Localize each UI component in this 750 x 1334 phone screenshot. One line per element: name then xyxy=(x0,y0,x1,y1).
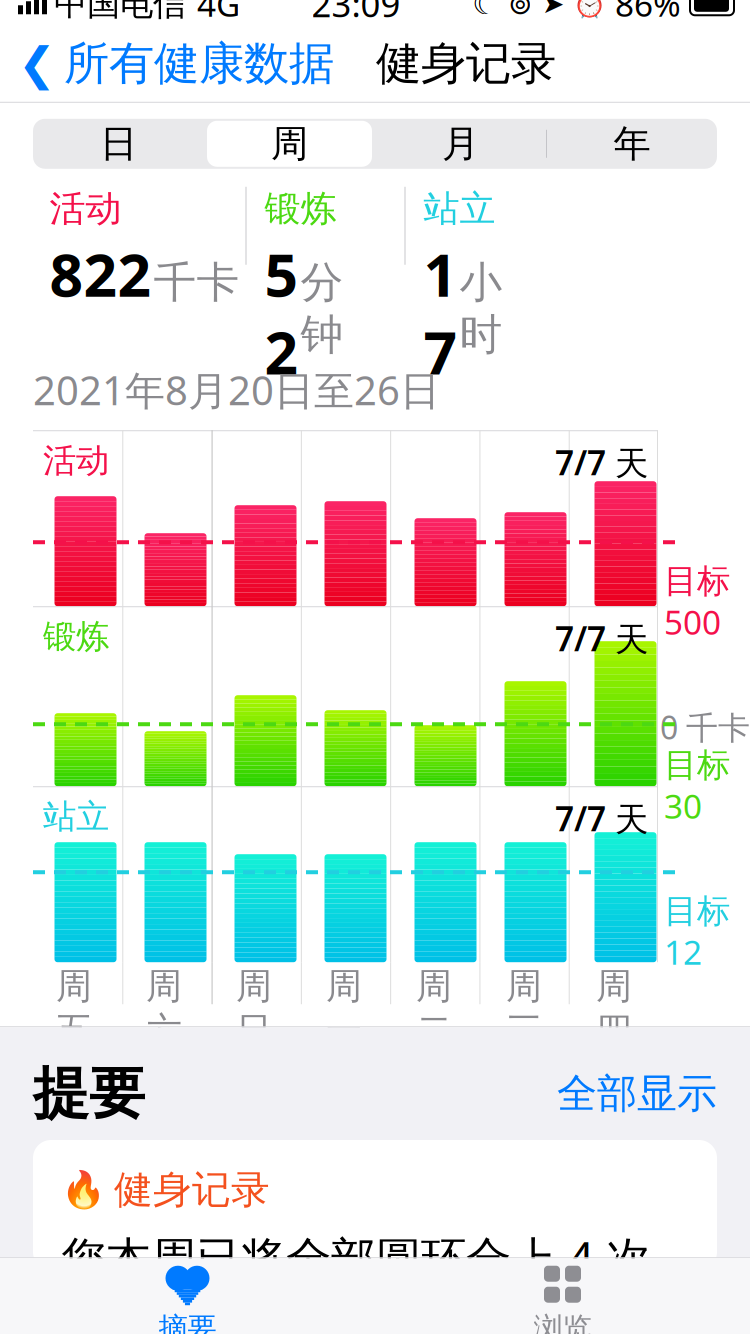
button[interactable]: ❮ xyxy=(0,28,334,100)
staticText: 站立 xyxy=(43,796,109,837)
staticText: 活动 xyxy=(43,440,109,481)
staticText: 86% xyxy=(615,0,681,26)
staticText: 您本周已将全部圆环合上 4 次。 xyxy=(61,1227,696,1288)
staticText: 0 小时 xyxy=(660,1062,750,1104)
button[interactable]: 🔥 xyxy=(33,1140,717,1270)
staticText: 站立 xyxy=(423,187,495,231)
staticText: 周 xyxy=(271,121,308,167)
staticText: 提要 xyxy=(33,1059,145,1128)
staticText: 4G xyxy=(197,0,240,26)
staticText: 822 xyxy=(49,235,151,313)
staticText: 所有健康数据 xyxy=(64,36,334,92)
staticText: 锻炼 xyxy=(264,187,336,231)
staticText: 500 xyxy=(664,600,721,644)
staticText: 小时 xyxy=(459,256,502,361)
staticText: ➤ xyxy=(542,0,564,19)
staticText: 0 千卡 xyxy=(660,706,750,748)
staticText: 周五 xyxy=(56,964,92,1053)
staticText: 目标 xyxy=(664,745,730,785)
staticText: ☾ xyxy=(472,0,499,21)
staticText: 摘要 xyxy=(158,1310,216,1334)
staticText: 千卡 xyxy=(153,256,239,309)
staticText: ⏰ xyxy=(573,0,606,19)
staticText: 17 xyxy=(423,235,457,391)
button[interactable]: 日 xyxy=(33,119,204,169)
staticText: 52 xyxy=(264,235,298,391)
staticText: 7/7 天 xyxy=(555,796,648,840)
staticText: 2021年8月20日至26日 xyxy=(33,363,440,416)
staticText: ⊚ xyxy=(508,0,533,20)
staticText: 周三 xyxy=(506,964,542,1053)
staticText: 周六 xyxy=(146,964,182,1053)
button[interactable]: 年 xyxy=(546,119,717,169)
staticText: 活动 xyxy=(49,187,121,231)
staticText: 日 xyxy=(100,121,137,167)
staticText: 周二 xyxy=(416,964,452,1053)
staticText: 目标 xyxy=(664,891,730,931)
staticText: 🔥 xyxy=(61,1169,106,1210)
staticText: ❮ xyxy=(18,38,56,89)
button[interactable]: 周 xyxy=(204,119,375,169)
staticText: 分钟 xyxy=(300,256,343,361)
staticText: 23:09 xyxy=(311,0,400,27)
staticText: 年 xyxy=(613,121,650,167)
staticText: 锻炼 xyxy=(43,616,109,657)
button[interactable]: 全部显示 xyxy=(557,1063,717,1124)
staticText: 周一 xyxy=(326,964,362,1053)
staticText: 目标 xyxy=(664,561,730,601)
button[interactable]: 浏览 xyxy=(375,1258,750,1334)
staticText: 30 xyxy=(664,784,702,828)
staticText: 12 xyxy=(664,930,702,974)
staticText: 健身记录 xyxy=(376,36,556,92)
staticText: 7/7 天 xyxy=(555,440,648,484)
staticText: 月 xyxy=(442,121,479,167)
button[interactable]: 摘要 xyxy=(0,1258,375,1334)
staticText: 中国电信 xyxy=(54,0,186,24)
button[interactable]: 月 xyxy=(375,119,546,169)
staticText: 周四 xyxy=(596,964,632,1053)
staticText: 全部显示 xyxy=(557,1069,717,1118)
staticText: 周日 xyxy=(236,964,272,1053)
staticText: 健身记录 xyxy=(114,1166,270,1213)
staticText: 浏览 xyxy=(533,1310,591,1334)
staticText: 7/7 天 xyxy=(555,616,648,660)
